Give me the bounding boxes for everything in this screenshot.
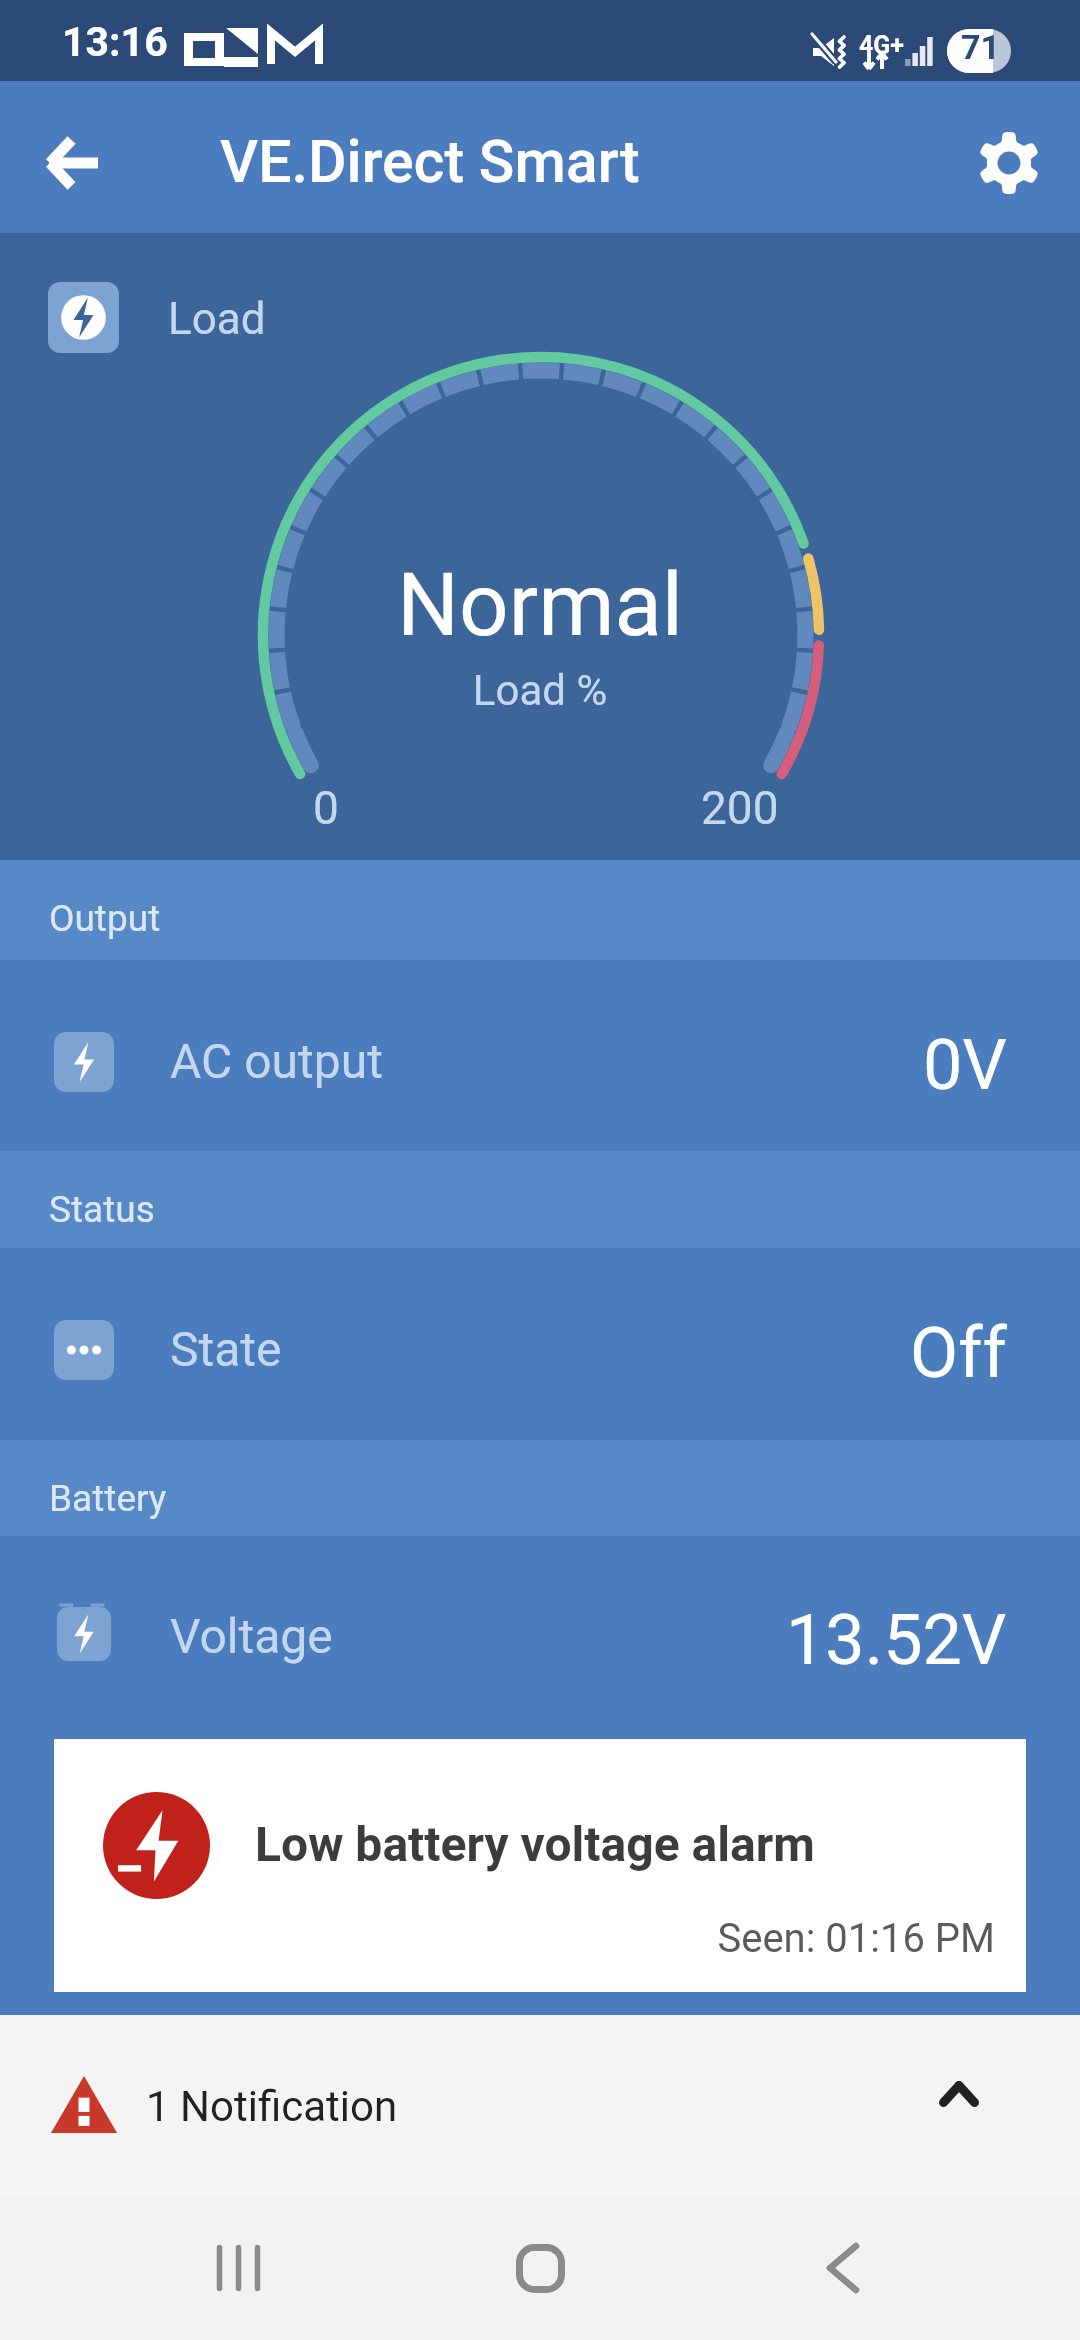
- staticText: 200: [701, 781, 779, 835]
- staticText: Normal: [0, 554, 1080, 656]
- button[interactable]: State: [0, 1248, 1080, 1440]
- staticText: Battery: [49, 1477, 167, 1520]
- button[interactable]: Collapse notifications: [921, 2056, 997, 2132]
- staticText: State: [170, 1321, 282, 1377]
- staticText: 71: [961, 27, 1001, 67]
- staticText: Low battery voltage alarm: [255, 1816, 815, 1872]
- staticText: Status: [49, 1188, 155, 1231]
- button[interactable]: Back: [783, 2208, 903, 2328]
- staticText: Load: [168, 293, 266, 345]
- staticText: Output: [49, 897, 161, 940]
- staticText: 0: [313, 781, 339, 835]
- button[interactable]: 1 Notification: [0, 2015, 1080, 2196]
- staticText: 1 Notification: [146, 2082, 398, 2131]
- button[interactable]: Voltage: [0, 1536, 1080, 1726]
- staticText: 4G+: [859, 31, 905, 60]
- staticText: VE.Direct Smart: [220, 127, 640, 196]
- staticText: Voltage: [170, 1608, 333, 1664]
- button[interactable]: Low battery voltage alarm: [54, 1739, 1026, 1992]
- staticText: 13:16: [62, 18, 168, 66]
- button[interactable]: Recent apps: [179, 2208, 299, 2328]
- button[interactable]: AC output: [0, 960, 1080, 1151]
- staticText: Off: [910, 1312, 1007, 1394]
- staticText: 0V: [923, 1024, 1007, 1106]
- staticText: 13.52V: [786, 1599, 1007, 1681]
- button[interactable]: Settings: [971, 125, 1047, 201]
- staticText: Load %: [0, 666, 1080, 715]
- staticText: AC output: [170, 1033, 383, 1089]
- button[interactable]: Home: [480, 2208, 600, 2328]
- staticText: Seen: 01:16 PM: [54, 1915, 995, 1962]
- button[interactable]: Back: [35, 125, 111, 201]
